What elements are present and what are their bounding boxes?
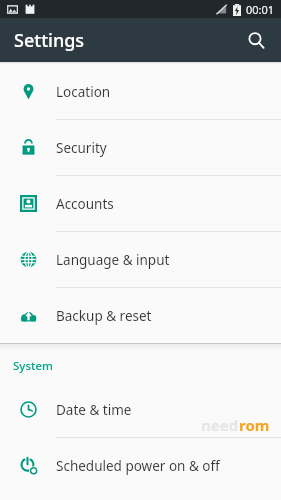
staticText: System bbox=[13, 358, 53, 374]
button[interactable]: Accounts bbox=[0, 176, 281, 231]
button[interactable]: Scheduled power on & off bbox=[0, 438, 281, 493]
button[interactable]: Date & time bbox=[0, 382, 281, 437]
staticText: Security bbox=[56, 139, 107, 157]
staticText: rom bbox=[239, 415, 270, 435]
staticText: Accounts bbox=[56, 195, 114, 213]
button[interactable]: Language & input bbox=[0, 232, 281, 287]
staticText: need bbox=[201, 415, 239, 435]
button[interactable]: Backup & reset bbox=[0, 288, 281, 343]
staticText: Date & time bbox=[56, 401, 132, 419]
button[interactable]: Search bbox=[239, 23, 273, 57]
staticText: Settings bbox=[14, 28, 85, 53]
staticText: Location bbox=[56, 83, 111, 101]
button[interactable]: Security bbox=[0, 120, 281, 175]
staticText: 00:01 bbox=[246, 2, 275, 17]
staticText: Language & input bbox=[56, 251, 170, 269]
button[interactable]: Location bbox=[0, 64, 281, 119]
staticText: Backup & reset bbox=[56, 307, 152, 325]
staticText: Scheduled power on & off bbox=[56, 457, 220, 475]
